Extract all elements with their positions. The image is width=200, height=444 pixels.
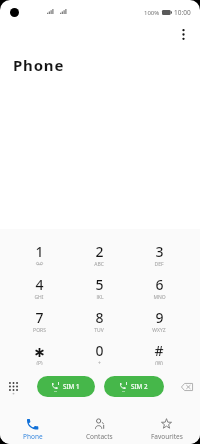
staticText: JKL	[96, 294, 104, 299]
staticText: 4	[35, 275, 44, 294]
staticText: 9	[155, 308, 164, 327]
button[interactable]: #	[129, 341, 189, 374]
staticText: 10:00	[174, 8, 191, 17]
button[interactable]: Favourites	[133, 417, 200, 443]
button[interactable]: 4	[9, 275, 69, 308]
button[interactable]: (P)	[9, 341, 69, 374]
staticText: GHI	[34, 294, 44, 299]
button[interactable]: 0	[69, 341, 129, 374]
button[interactable]: SIM 2	[104, 376, 164, 397]
button[interactable]: Contacts	[66, 417, 133, 443]
staticText: MNO	[153, 294, 166, 299]
staticText: Favourites	[151, 432, 183, 441]
button[interactable]: 9	[129, 308, 189, 341]
staticText: SIM 1	[63, 382, 80, 391]
button[interactable]: Delete	[180, 380, 194, 394]
button[interactable]: Keypad	[6, 380, 20, 394]
staticText: 7	[35, 308, 44, 327]
staticText: Contacts	[86, 432, 113, 441]
button[interactable]: Phone	[0, 417, 66, 443]
button[interactable]: 2	[69, 242, 129, 275]
staticText: DEF	[154, 261, 164, 266]
staticText: (P)	[36, 360, 43, 365]
button[interactable]: 6	[129, 275, 189, 308]
staticText: 8	[95, 308, 104, 327]
staticText: 3	[155, 242, 164, 261]
staticText: Phone	[23, 432, 43, 441]
staticText: ABC	[94, 261, 104, 266]
staticText: 5	[95, 275, 104, 294]
staticText: WXYZ	[152, 327, 166, 332]
button[interactable]: More options	[173, 24, 194, 45]
staticText: 0	[95, 341, 104, 360]
button[interactable]: 3	[129, 242, 189, 275]
staticText: Phone	[13, 55, 65, 75]
button[interactable]: SIM 1	[37, 376, 95, 397]
staticText: PQRS	[33, 327, 46, 332]
button[interactable]: 1	[9, 242, 69, 275]
staticText: SIM 2	[131, 382, 148, 391]
button[interactable]: 7	[9, 308, 69, 341]
staticText: 1	[35, 242, 44, 261]
staticText: 6	[155, 275, 164, 294]
staticText: #	[154, 341, 164, 360]
staticText: TUV	[94, 327, 104, 332]
staticText: +	[98, 360, 101, 365]
button[interactable]: 5	[69, 275, 129, 308]
staticText: 2	[95, 242, 104, 261]
button[interactable]: 8	[69, 308, 129, 341]
staticText: (W)	[155, 360, 163, 365]
staticText: 100%	[144, 9, 160, 17]
